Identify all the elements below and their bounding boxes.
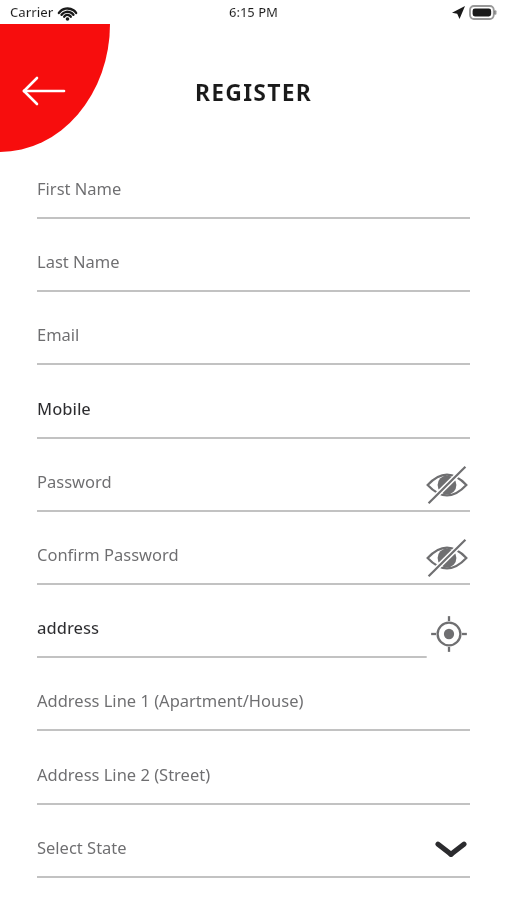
button[interactable]: Select State (37, 833, 470, 881)
staticText: Select State (37, 836, 127, 858)
staticText: REGISTER (0, 76, 507, 107)
staticText: Carrier (10, 3, 54, 21)
button[interactable]: Confirm Password (37, 540, 470, 588)
staticText: Address Line 2 (Street) (37, 763, 211, 785)
button[interactable]: Select State (434, 837, 468, 861)
staticText: Password (37, 470, 112, 492)
staticText: Confirm Password (37, 543, 179, 565)
staticText: 6:15 PM (0, 3, 507, 21)
staticText: Last Name (37, 250, 120, 272)
button[interactable]: Back (10, 66, 72, 116)
staticText: Address Line 1 (Apartment/House) (37, 689, 304, 711)
button[interactable]: Address Line 2 (Street) (37, 760, 470, 808)
button[interactable]: Use current location (430, 615, 468, 653)
button[interactable]: Toggle password visibility (425, 543, 469, 573)
staticText: Email (37, 323, 80, 345)
button[interactable]: Mobile (37, 394, 470, 442)
staticText: First Name (37, 177, 122, 199)
button[interactable]: Email (37, 320, 470, 368)
staticText: Mobile (37, 397, 91, 419)
button[interactable]: Address Line 1 (Apartment/House) (37, 686, 470, 734)
button[interactable]: Last Name (37, 247, 470, 295)
button[interactable]: Toggle password visibility (425, 470, 469, 500)
button[interactable]: Password (37, 467, 470, 515)
staticText: address (37, 616, 100, 638)
button[interactable]: address (37, 613, 470, 661)
button[interactable]: First Name (37, 174, 470, 222)
